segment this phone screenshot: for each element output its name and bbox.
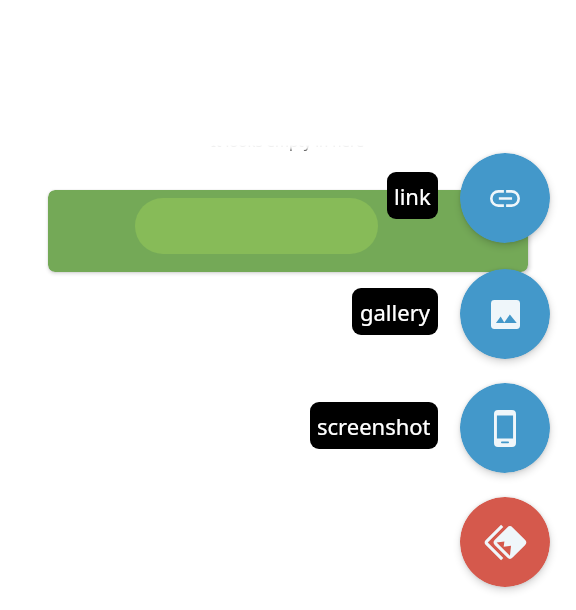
button[interactable]: link bbox=[387, 172, 438, 219]
staticText: link bbox=[394, 181, 431, 211]
staticText: It looks empty in here bbox=[211, 131, 365, 151]
staticText: screenshot bbox=[317, 411, 431, 441]
button[interactable]: gallery bbox=[352, 288, 438, 335]
staticText: gallery bbox=[360, 297, 430, 327]
button[interactable]: New entry bbox=[460, 497, 550, 587]
button[interactable]: screenshot bbox=[460, 383, 550, 473]
button[interactable]: screenshot bbox=[310, 402, 438, 449]
button[interactable] bbox=[48, 190, 528, 272]
button[interactable]: gallery bbox=[460, 269, 550, 359]
button[interactable]: link bbox=[460, 153, 550, 243]
